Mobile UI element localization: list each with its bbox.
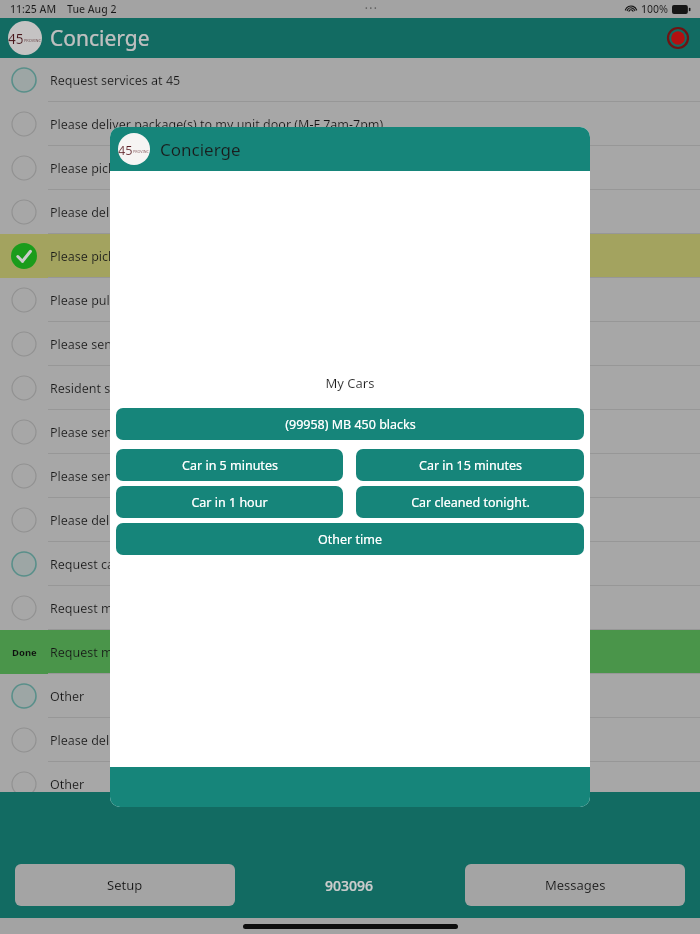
staticText: Please send maintenance. <box>50 468 203 485</box>
staticText: Concierge <box>160 138 241 161</box>
staticText: Please deliver package(s) to my unit doo… <box>50 116 387 133</box>
button[interactable]: Please pick up dry cleaning. <box>0 146 700 190</box>
button[interactable]: Request car services <box>0 542 700 586</box>
staticText: Tue Aug 2 <box>67 2 117 16</box>
staticText: Please send housekeeping. <box>50 336 210 353</box>
button[interactable]: Car in 5 minutes <box>116 449 343 481</box>
staticText: Request my car now. <box>50 600 172 617</box>
button[interactable]: Please pick up my package. <box>0 234 700 278</box>
staticText: 11:25 AM <box>10 2 57 16</box>
staticText: PROVINCE <box>24 38 42 43</box>
button[interactable]: Setup <box>15 864 235 906</box>
staticText: 100% <box>641 2 668 16</box>
button[interactable]: Messages <box>465 864 685 906</box>
staticText: Request services at 45 <box>50 72 181 89</box>
button[interactable]: Please send maintenance. <box>0 454 700 498</box>
staticText: Car in 15 minutes <box>419 457 522 474</box>
button[interactable]: Please send the valet. <box>0 410 700 454</box>
button[interactable]: Request my car now. <box>0 586 700 630</box>
button[interactable]: (99958) MB 450 blacks <box>116 408 584 440</box>
staticText: Car cleaned tonight. <box>411 494 530 511</box>
button[interactable]: Other <box>0 762 700 806</box>
button[interactable]: Please send housekeeping. <box>0 322 700 366</box>
staticText: Other time <box>318 531 382 548</box>
staticText: Other <box>50 688 85 705</box>
button[interactable]: Other time <box>116 523 584 555</box>
staticText: • • • <box>365 4 377 14</box>
button[interactable]: Record <box>664 24 692 52</box>
staticText: Request my car tonight. <box>50 644 191 661</box>
button[interactable]: Car in 15 minutes <box>356 449 584 481</box>
button[interactable]: Car cleaned tonight. <box>356 486 584 518</box>
button[interactable]: Car in 1 hour <box>116 486 343 518</box>
button[interactable]: Please deliver to my unit. <box>0 498 700 542</box>
staticText: Please pick up my package. <box>50 248 211 265</box>
staticText: Car in 1 hour <box>191 494 268 511</box>
staticText: Please deliver a message. <box>50 732 201 749</box>
staticText: Please pick up dry cleaning. <box>50 160 213 177</box>
staticText: Concierge <box>50 24 150 53</box>
button[interactable]: Please pull my car around. <box>0 278 700 322</box>
staticText: (99958) MB 450 blacks <box>285 416 416 433</box>
staticText: 45 <box>118 141 133 158</box>
staticText: Resident services request. <box>50 380 203 397</box>
staticText: 45 <box>8 29 24 48</box>
staticText: PROVINCE <box>133 149 150 154</box>
staticText: 903096 <box>325 876 374 895</box>
staticText: Please deliver my dry cleaning. <box>50 204 231 221</box>
staticText: Setup <box>107 876 143 894</box>
staticText: Please pull my car around. <box>50 292 205 309</box>
button[interactable]: Done <box>0 630 700 674</box>
button[interactable]: Please deliver package(s) to my unit doo… <box>0 102 700 146</box>
staticText: My Cars <box>116 374 584 392</box>
button[interactable]: Resident services request. <box>0 366 700 410</box>
staticText: Please deliver to my unit. <box>50 512 198 529</box>
staticText: Car in 5 minutes <box>182 457 278 474</box>
staticText: Messages <box>545 876 606 894</box>
staticText: Please send the valet. <box>50 424 177 441</box>
button[interactable]: Other <box>0 674 700 718</box>
button[interactable]: Please deliver a message. <box>0 718 700 762</box>
staticText: Done <box>12 646 37 659</box>
staticText: Request car services <box>50 556 170 573</box>
button[interactable]: Please deliver my dry cleaning. <box>0 190 700 234</box>
staticText: Other <box>50 776 85 793</box>
button[interactable]: Request services at 45 <box>0 58 700 102</box>
